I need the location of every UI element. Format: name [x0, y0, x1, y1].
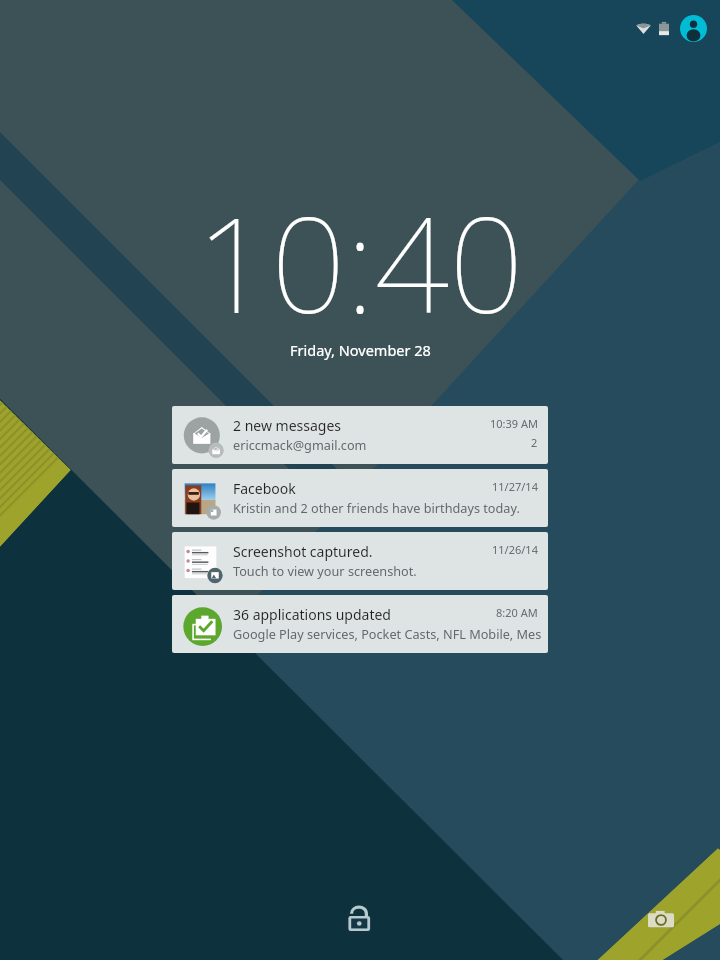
- staticText: Touch to view your screenshot.: [233, 562, 417, 579]
- staticText: 2 new messages: [233, 416, 342, 435]
- staticText: Facebook: [233, 479, 296, 498]
- button[interactable]: 2 new messages: [172, 406, 548, 464]
- button[interactable]: User profile: [680, 15, 707, 42]
- staticText: 2: [531, 435, 538, 450]
- button[interactable]: 36 applications updated: [172, 595, 548, 653]
- button[interactable]: Facebook: [172, 469, 548, 527]
- staticText: ericcmack@gmail.com: [233, 436, 367, 453]
- button[interactable]: Unlock: [345, 903, 376, 934]
- staticText: 36 applications updated: [233, 605, 391, 624]
- staticText: Google Play services, Pocket Casts, NFL …: [233, 625, 542, 642]
- staticText: 10:40: [196, 173, 524, 351]
- staticText: Friday, November 28: [290, 340, 431, 360]
- button[interactable]: Screenshot captured.: [172, 532, 548, 590]
- staticText: 8:20 AM: [496, 605, 538, 620]
- staticText: Kristin and 2 other friends have birthda…: [233, 499, 520, 516]
- staticText: 10:39 AM: [490, 416, 538, 431]
- staticText: Screenshot captured.: [233, 542, 373, 561]
- staticText: 11/26/14: [492, 542, 538, 557]
- staticText: 11/27/14: [492, 479, 538, 494]
- button[interactable]: Camera: [648, 907, 674, 933]
